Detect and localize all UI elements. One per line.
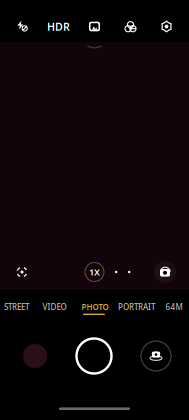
button[interactable]: 64M	[159, 299, 189, 315]
button[interactable]: 1X	[85, 262, 104, 281]
button[interactable]: Flash off	[8, 13, 36, 39]
button[interactable]: PORTRAIT	[114, 299, 159, 315]
button[interactable]: PHOTO	[76, 299, 114, 315]
button[interactable]: Switch camera	[154, 261, 176, 283]
button[interactable]: Gallery	[23, 344, 47, 368]
button[interactable]: STREET	[0, 299, 33, 315]
staticText: 64M	[165, 302, 182, 312]
staticText: HDR	[47, 19, 70, 34]
button[interactable]: Settings	[152, 13, 180, 39]
button[interactable]: Focus mode	[9, 259, 35, 285]
button[interactable]: Shutter	[76, 338, 111, 373]
staticText: STREET	[4, 302, 29, 312]
staticText: PORTRAIT	[118, 302, 155, 312]
button[interactable]: AI camera	[141, 341, 171, 371]
button[interactable]: Filters	[116, 13, 144, 39]
button[interactable]: HDR	[44, 13, 72, 39]
staticText: 1X	[89, 266, 100, 278]
staticText: VIDEO	[42, 302, 66, 312]
button[interactable]: VIDEO	[33, 299, 76, 315]
button[interactable]: Photo size	[80, 13, 108, 39]
staticText: PHOTO	[81, 302, 108, 312]
